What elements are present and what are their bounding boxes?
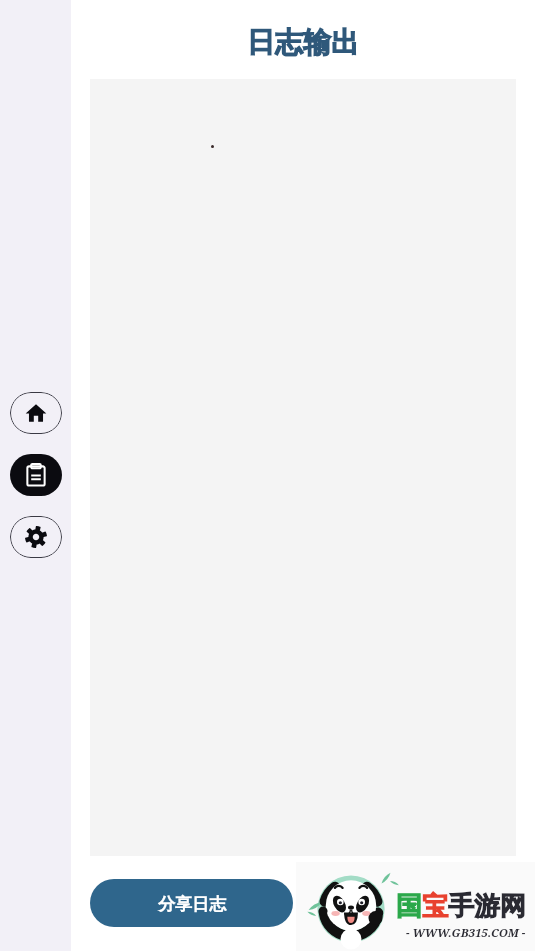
button[interactable]: Home (10, 392, 62, 434)
staticText: - WWW.GB315.COM - (406, 925, 526, 941)
staticText: 宝 (422, 890, 448, 923)
staticText: 分享日志 (158, 894, 226, 915)
button[interactable]: Logs (10, 454, 62, 496)
button[interactable]: Settings (10, 516, 62, 558)
button[interactable]: 分享日志 (90, 879, 293, 927)
staticText: 手游网 (448, 890, 526, 923)
staticText: 日志输出 (247, 25, 359, 60)
staticText: 国 (396, 890, 422, 923)
